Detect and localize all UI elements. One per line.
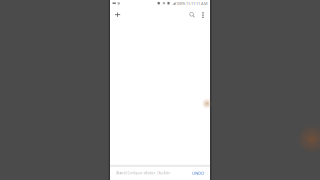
staticText: [Shared] Configure a Button | YouTube xyxy=(115,171,170,175)
staticText: 100% 11:11:11 AM xyxy=(176,1,208,6)
button[interactable]: UNDO xyxy=(191,170,204,177)
button[interactable]: More options xyxy=(198,9,208,22)
button[interactable]: Search xyxy=(186,8,198,21)
button[interactable]: New xyxy=(111,8,125,21)
staticText: UNDO xyxy=(192,170,204,176)
